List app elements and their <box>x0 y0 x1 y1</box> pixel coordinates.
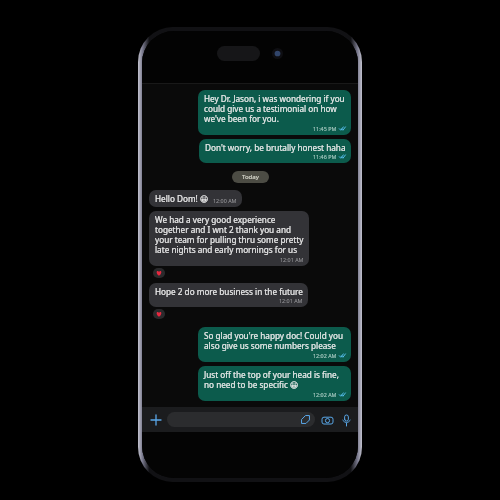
staticText: Don't worry, be brutally honest haha <box>205 142 346 153</box>
staticText: Hope 2 do more business in the future <box>155 286 303 297</box>
button[interactable]: Just off the top of your head is fine, n… <box>198 366 351 401</box>
staticText: Just off the top of your head is fine, n… <box>204 369 346 391</box>
staticText: 12:02 AM <box>313 352 337 359</box>
staticText: 12:01 AM <box>279 297 303 304</box>
staticText: We had a very good experience together a… <box>155 214 304 256</box>
button[interactable]: Voice message <box>339 413 353 427</box>
button[interactable]: Heart reaction <box>153 268 165 278</box>
button[interactable]: We had a very good experience together a… <box>149 211 309 266</box>
staticText: Hello Dom! 😀 <box>155 193 209 204</box>
staticText: 12:00 AM <box>213 197 237 204</box>
button[interactable]: Hope 2 do more business in the future <box>149 283 308 307</box>
staticText: 11:46 PM <box>313 153 337 160</box>
staticText: 12:01 AM <box>280 256 304 263</box>
staticText: Hey Dr. Jason, i was wondering if you co… <box>204 93 346 125</box>
button[interactable]: Hello Dom! 😀 <box>149 190 242 207</box>
staticText: 11:45 PM <box>313 125 337 132</box>
staticText: Today <box>242 173 259 181</box>
button[interactable]: Hey Dr. Jason, i was wondering if you co… <box>198 90 351 135</box>
button[interactable]: Attach <box>147 411 164 428</box>
button[interactable]: Camera <box>320 413 334 427</box>
button[interactable]: Heart reaction <box>153 309 165 319</box>
staticText: So glad you're happy doc! Could you also… <box>204 330 346 352</box>
staticText: 12:02 AM <box>313 391 337 398</box>
button[interactable]: Don't worry, be brutally honest haha <box>199 139 351 163</box>
button[interactable] <box>167 412 315 427</box>
button[interactable]: So glad you're happy doc! Could you also… <box>198 327 351 362</box>
